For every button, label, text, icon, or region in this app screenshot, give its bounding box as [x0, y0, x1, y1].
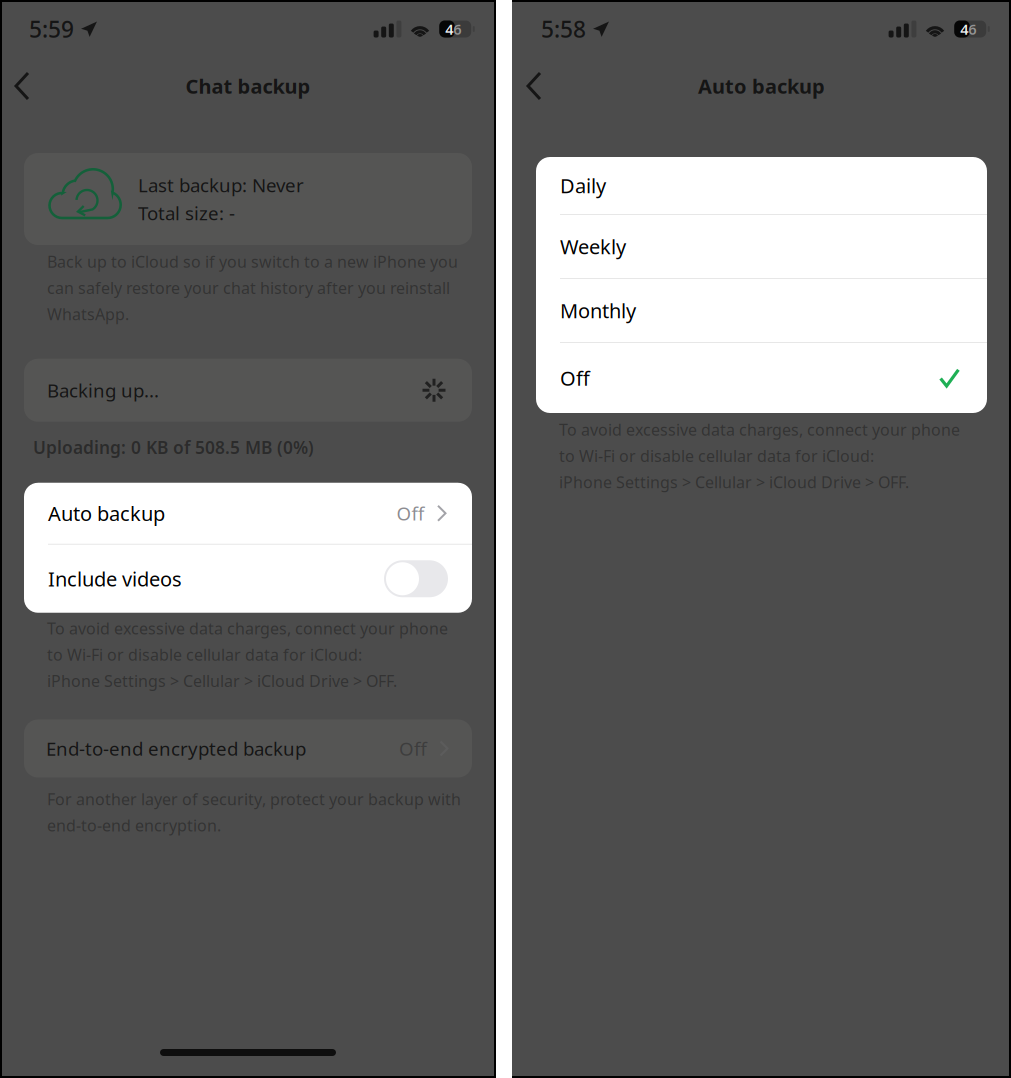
staticText: Back up to iCloud so if you switch to a … [47, 251, 458, 325]
button[interactable]: Monthly [536, 279, 987, 342]
button[interactable]: Back [0, 59, 51, 113]
button[interactable]: Back [512, 59, 563, 113]
button[interactable]: Off [536, 343, 987, 413]
staticText: Total size: - [138, 200, 235, 225]
staticText: To avoid excessive data charges, connect… [559, 419, 960, 493]
staticText: 4 [960, 19, 968, 39]
staticText: To avoid excessive data charges, connect… [47, 618, 448, 691]
button[interactable]: End-to-end encrypted backup [24, 719, 472, 777]
button[interactable]: Auto backup [24, 483, 472, 544]
staticText: Monthly [560, 297, 636, 324]
staticText: For another layer of security, protect y… [47, 788, 461, 836]
staticText: Off [560, 365, 590, 391]
staticText: Chat backup [185, 73, 310, 99]
staticText: 4 [445, 19, 453, 39]
button[interactable]: Include videos [24, 545, 472, 613]
button[interactable]: Daily [536, 157, 987, 214]
staticText: Daily [560, 172, 606, 199]
staticText: Auto backup [698, 73, 825, 99]
staticText: Weekly [560, 233, 626, 260]
staticText: 6 [453, 19, 461, 39]
staticText: 5:58 [541, 14, 586, 44]
staticText: 5:59 [29, 14, 74, 44]
staticText: Last backup: Never [138, 173, 304, 197]
staticText: Off [396, 501, 424, 526]
staticText: Auto backup [48, 500, 165, 527]
staticText: Include videos [48, 565, 182, 592]
staticText: Backing up... [47, 378, 159, 403]
staticText: End-to-end encrypted backup [46, 736, 306, 761]
button[interactable]: Weekly [536, 215, 987, 278]
staticText: 6 [968, 19, 976, 39]
staticText: Uploading: 0 KB of 508.5 MB (0%) [33, 436, 314, 459]
staticText: Off [399, 736, 427, 761]
